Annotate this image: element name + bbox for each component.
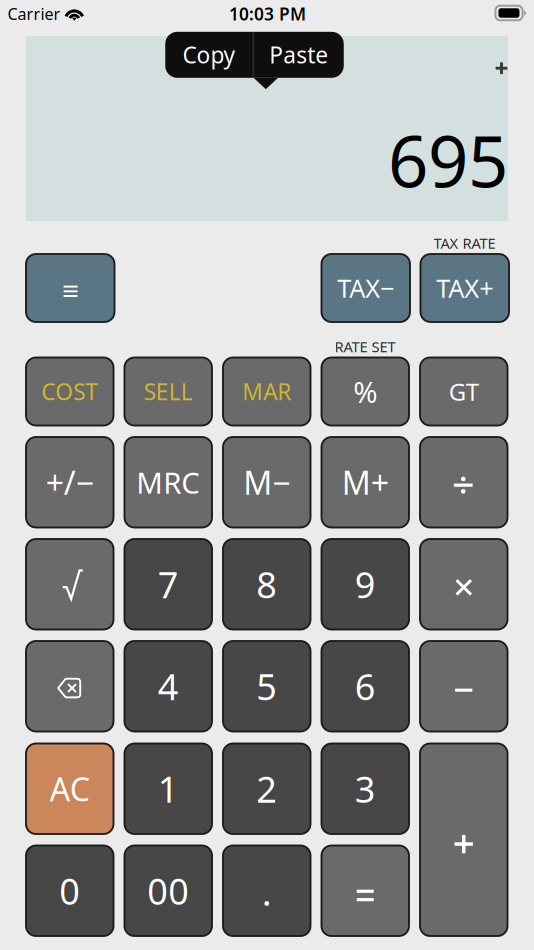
button[interactable]: MRC xyxy=(124,437,212,527)
staticText: SELL xyxy=(144,376,193,406)
staticText: 00 xyxy=(147,867,189,915)
staticText: Copy xyxy=(182,40,235,70)
button[interactable]: Minus xyxy=(420,641,507,731)
button[interactable]: Divide xyxy=(420,437,507,527)
button[interactable]: 6 xyxy=(321,641,409,731)
button[interactable]: M+ xyxy=(321,437,409,527)
staticText: 1 xyxy=(158,765,179,813)
staticText: 8 xyxy=(256,560,277,608)
staticText: M− xyxy=(243,461,290,503)
button[interactable]: 2 xyxy=(223,743,310,834)
staticText: 9 xyxy=(355,560,376,608)
button[interactable]: COST xyxy=(26,357,113,425)
button[interactable]: TAX− xyxy=(321,254,410,322)
staticText: 695 xyxy=(388,113,508,207)
button[interactable]: 0 xyxy=(26,845,113,936)
button[interactable]: M− xyxy=(223,437,310,527)
staticText: 4 xyxy=(158,662,179,710)
staticText: 7 xyxy=(158,560,179,608)
button[interactable]: % xyxy=(321,357,409,425)
button[interactable]: Paste xyxy=(254,32,344,78)
button[interactable]: 4 xyxy=(124,641,212,731)
button[interactable]: SELL xyxy=(124,357,212,425)
button[interactable]: +/− xyxy=(26,437,113,527)
button[interactable]: 8 xyxy=(223,539,310,629)
staticText: TAX− xyxy=(337,271,394,305)
staticText: Paste xyxy=(269,40,328,70)
staticText: % xyxy=(353,372,377,411)
button[interactable]: 5 xyxy=(223,641,310,731)
staticText: TAX RATE xyxy=(433,233,495,253)
button[interactable]: MAR xyxy=(223,357,310,425)
staticText: TAX+ xyxy=(436,271,493,305)
staticText: 10:03 PM xyxy=(229,2,306,25)
staticText: 3 xyxy=(355,765,376,813)
staticText: 6 xyxy=(355,662,376,710)
staticText: COST xyxy=(41,376,98,406)
button[interactable]: Equals xyxy=(321,845,409,936)
staticText: 5 xyxy=(256,662,277,710)
staticText: GT xyxy=(449,376,479,407)
button[interactable]: Copy xyxy=(165,32,253,78)
staticText: 0 xyxy=(59,867,80,915)
staticText: MAR xyxy=(242,376,291,406)
staticText: MRC xyxy=(136,463,200,502)
button[interactable]: GT xyxy=(420,357,507,425)
button[interactable]: Menu xyxy=(26,254,114,322)
staticText: 2 xyxy=(256,765,277,813)
button[interactable]: Plus xyxy=(420,743,507,936)
button[interactable]: 9 xyxy=(321,539,409,629)
staticText: RATE SET xyxy=(334,337,395,356)
staticText: +/− xyxy=(46,461,94,503)
button[interactable]: Square root xyxy=(26,539,113,629)
button[interactable]: 00 xyxy=(124,845,212,936)
button[interactable]: Delete xyxy=(26,641,113,731)
staticText: Carrier xyxy=(7,3,60,24)
staticText: AC xyxy=(50,767,90,810)
button[interactable]: 3 xyxy=(321,743,409,834)
button[interactable]: AC xyxy=(26,743,113,834)
staticText: M+ xyxy=(342,461,389,503)
button[interactable]: Decimal point xyxy=(223,845,310,936)
button[interactable]: Multiply xyxy=(420,539,507,629)
button[interactable]: 7 xyxy=(124,539,212,629)
button[interactable]: 1 xyxy=(124,743,212,834)
button[interactable]: TAX+ xyxy=(420,254,509,322)
